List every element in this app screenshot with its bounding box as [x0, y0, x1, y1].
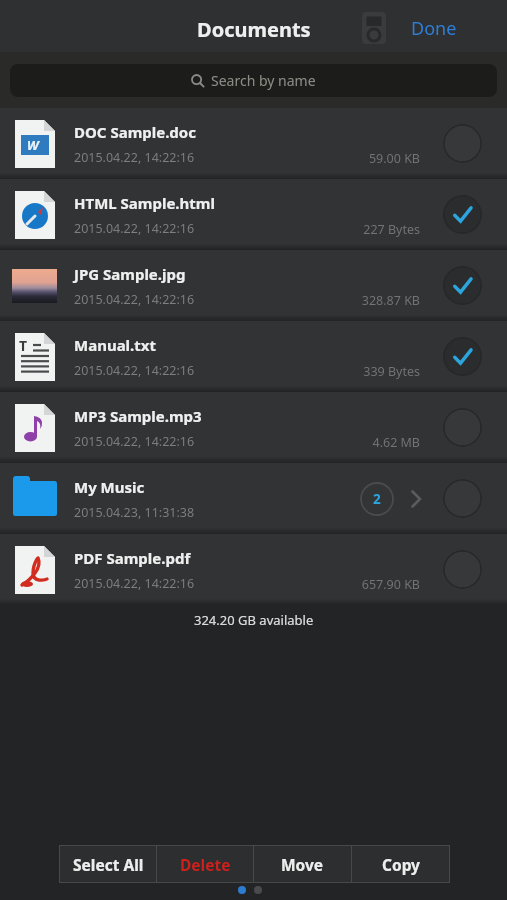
staticText: 324.20 GB available [194, 611, 314, 629]
staticText: Delete [180, 854, 231, 875]
staticText: 4.62 MB [300, 434, 420, 451]
staticText: 227 Bytes [300, 221, 420, 238]
staticText: 657.90 KB [300, 576, 420, 593]
button[interactable]: Delete [157, 846, 253, 882]
staticText: Documents [197, 16, 311, 43]
staticText: 2015.04.22, 14:22:16 [74, 575, 195, 592]
button[interactable] [443, 550, 482, 589]
button[interactable] [362, 12, 386, 44]
staticText: Done [411, 16, 457, 41]
staticText: My Music [74, 477, 145, 497]
button[interactable]: Copy [352, 846, 449, 882]
staticText: 59.00 KB [300, 150, 420, 167]
button[interactable]: My Music [0, 463, 507, 534]
button[interactable] [443, 479, 482, 518]
staticText: 328.87 KB [300, 292, 420, 309]
staticText: Copy [382, 854, 420, 875]
staticText: Select All [73, 854, 144, 875]
button[interactable]: Search by name [10, 64, 497, 97]
button[interactable] [443, 195, 482, 234]
staticText: 339 Bytes [300, 363, 420, 380]
staticText: W [27, 136, 39, 154]
button[interactable] [443, 266, 482, 305]
staticText: 2015.04.22, 14:22:16 [74, 291, 195, 308]
button[interactable]: Done [403, 6, 449, 31]
staticText: DOC Sample.doc [74, 122, 196, 142]
staticText: Manual.txt [74, 335, 156, 355]
button[interactable]: MP3 Sample.mp3 [0, 392, 507, 463]
button[interactable]: T [0, 321, 507, 392]
staticText: Move [281, 854, 324, 875]
staticText: MP3 Sample.mp3 [74, 406, 202, 426]
staticText: 2015.04.22, 14:22:16 [74, 362, 195, 379]
button[interactable]: HTML Sample.html [0, 179, 507, 250]
staticText: 2 [373, 490, 381, 508]
staticText: 2015.04.22, 14:22:16 [74, 433, 195, 450]
button[interactable] [443, 124, 482, 163]
button[interactable]: PDF Sample.pdf [0, 534, 507, 605]
button[interactable]: W [0, 108, 507, 179]
button[interactable]: Select All [60, 846, 156, 882]
staticText: PDF Sample.pdf [74, 548, 191, 568]
button[interactable]: JPG Sample.jpg [0, 250, 507, 321]
staticText: 2015.04.22, 14:22:16 [74, 220, 195, 237]
button[interactable] [443, 337, 482, 376]
staticText: Search by name [211, 71, 316, 90]
staticText: HTML Sample.html [74, 193, 215, 213]
staticText: 2015.04.23, 11:31:38 [74, 504, 195, 521]
staticText: 2015.04.22, 14:22:16 [74, 149, 195, 166]
staticText: JPG Sample.jpg [74, 264, 186, 284]
button[interactable]: Move [254, 846, 351, 882]
staticText: T [19, 336, 28, 355]
button[interactable] [443, 408, 482, 447]
